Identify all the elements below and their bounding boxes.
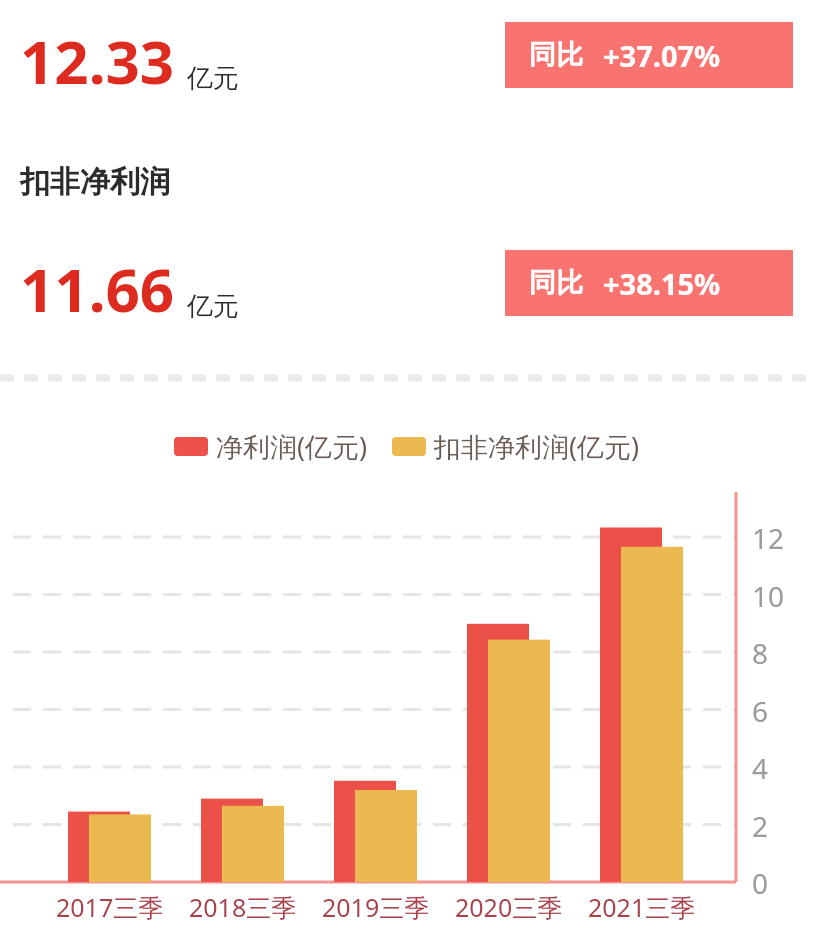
button[interactable]: 同比 xyxy=(505,250,793,316)
staticText: 2020三季 xyxy=(455,890,563,924)
staticText: +37.07% xyxy=(603,36,721,75)
staticText: 8 xyxy=(752,634,769,672)
staticText: 扣非净利润(亿元) xyxy=(434,428,640,465)
staticText: 10 xyxy=(752,577,785,615)
staticText: 4 xyxy=(752,749,769,787)
staticText: 6 xyxy=(752,692,769,730)
staticText: 净利润(亿元) xyxy=(216,428,368,465)
staticText: 亿元 xyxy=(187,290,239,323)
staticText: +38.15% xyxy=(603,264,721,303)
staticText: 2 xyxy=(752,807,769,845)
staticText: 2018三季 xyxy=(189,890,297,924)
staticText: 12 xyxy=(752,519,785,557)
staticText: 同比 xyxy=(529,266,583,300)
staticText: 2017三季 xyxy=(56,890,164,924)
staticText: 扣非净利润 xyxy=(20,163,170,201)
staticText: 12.33 xyxy=(20,20,175,102)
staticText: 同比 xyxy=(529,38,583,72)
staticText: 11.66 xyxy=(20,248,175,330)
staticText: 2021三季 xyxy=(588,890,696,924)
staticText: 0 xyxy=(752,864,769,902)
staticText: 2019三季 xyxy=(322,890,430,924)
button[interactable]: 同比 xyxy=(505,22,793,88)
staticText: 亿元 xyxy=(187,62,239,95)
